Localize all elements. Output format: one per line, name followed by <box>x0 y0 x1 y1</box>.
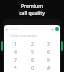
button[interactable]: 7 <box>11 57 20 65</box>
staticText: 8 <box>31 57 34 64</box>
button[interactable]: 9 <box>44 57 53 65</box>
other: Account <box>55 27 59 31</box>
button[interactable]: 5 <box>28 49 37 57</box>
button[interactable]: 3 <box>44 41 53 49</box>
button[interactable]: 1 <box>11 41 20 49</box>
staticText: * <box>14 65 17 72</box>
staticText: Premium call quality <box>19 3 45 16</box>
button[interactable]: Search <box>5 26 59 32</box>
staticText: Search <box>9 27 19 31</box>
other: Search <box>5 28 8 31</box>
staticText: 9 <box>47 57 50 64</box>
button[interactable]: 0 <box>28 65 37 72</box>
staticText: Create new contact <box>10 34 38 38</box>
button[interactable]: 4 <box>11 49 20 57</box>
button[interactable]: 6 <box>44 49 53 57</box>
button[interactable]: # <box>44 65 53 72</box>
button[interactable]: 8 <box>28 57 37 65</box>
staticText: # <box>47 65 51 72</box>
staticText: 4 <box>14 49 17 56</box>
staticText: 7 <box>14 57 17 64</box>
staticText: 6 <box>47 49 50 56</box>
staticText: 0 <box>31 65 34 72</box>
staticText: 3 <box>47 41 50 48</box>
staticText: 1 <box>14 41 17 48</box>
button[interactable]: 2 <box>28 41 37 49</box>
staticText: 2 <box>31 41 34 48</box>
staticText: 5 <box>31 49 34 56</box>
button[interactable]: * <box>11 65 20 72</box>
